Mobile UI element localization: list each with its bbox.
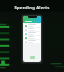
- button[interactable]: Add speeding alert: [23, 16, 41, 62]
- button[interactable]: [24, 36, 40, 39]
- button[interactable]: Add speeding alert: [30, 56, 35, 59]
- button[interactable]: [24, 40, 40, 43]
- staticText: Speeding Alerts: [14, 5, 50, 11]
- button[interactable]: [24, 32, 40, 35]
- button[interactable]: [24, 24, 40, 27]
- button[interactable]: [24, 28, 40, 31]
